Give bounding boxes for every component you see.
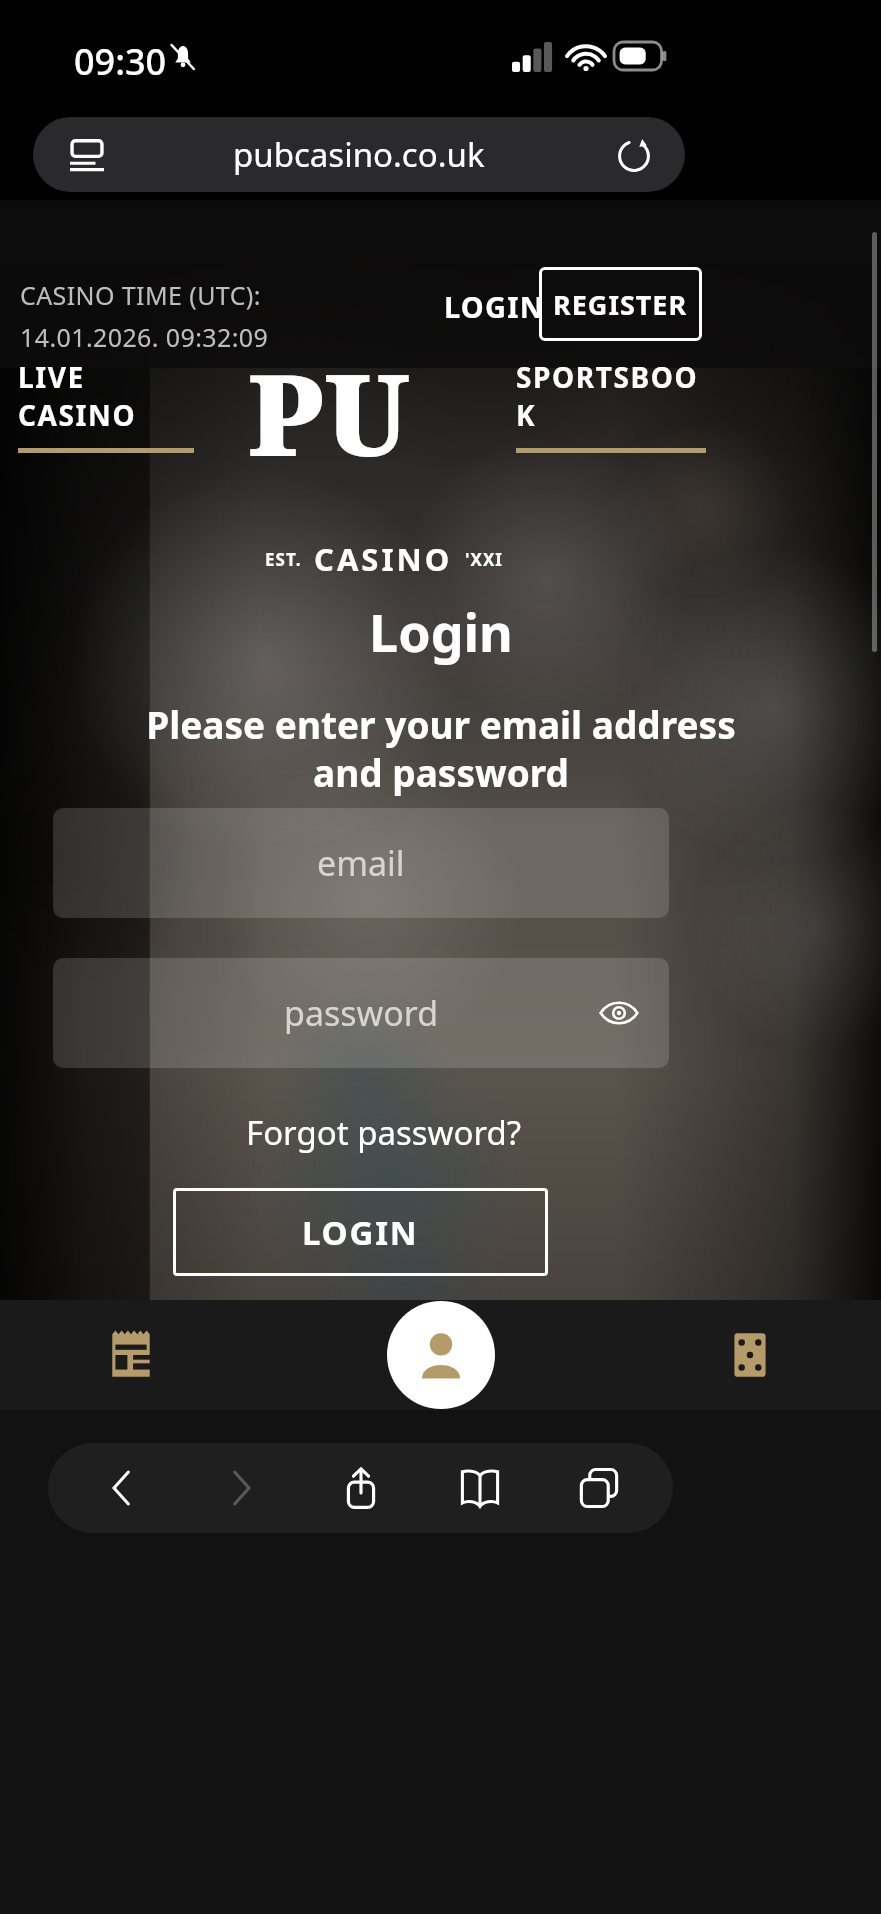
staticText: password: [284, 990, 439, 1036]
staticText: 09:30: [74, 37, 167, 86]
button[interactable]: pubcasino.co.uk: [33, 117, 685, 192]
button[interactable]: LOGIN: [444, 287, 545, 326]
staticText: 'XXI: [465, 548, 503, 571]
button[interactable]: email: [53, 808, 669, 918]
staticText: Please enter your email address and pass…: [131, 699, 751, 798]
staticText: REGISTER: [553, 286, 688, 323]
button[interactable]: Bookmarks: [435, 1443, 525, 1533]
button[interactable]: Show password: [587, 981, 651, 1045]
staticText: Login: [369, 596, 513, 667]
button[interactable]: PUB: [248, 336, 484, 476]
button[interactable]: Forward: [196, 1443, 286, 1533]
staticText: 14.01.2026. 09:32:09: [20, 320, 269, 354]
button[interactable]: Back: [77, 1443, 167, 1533]
button[interactable]: LOGIN: [173, 1188, 548, 1276]
staticText: LOGIN: [302, 1210, 419, 1255]
button[interactable]: Page settings: [59, 127, 115, 183]
staticText: PUB: [248, 336, 484, 476]
staticText: LOGIN: [444, 287, 545, 326]
button[interactable]: password: [53, 958, 669, 1068]
staticText: CASINO: [314, 538, 453, 580]
button[interactable]: Forgot password?: [246, 1110, 522, 1155]
button[interactable]: Share: [316, 1443, 406, 1533]
button[interactable]: Tabs: [554, 1443, 644, 1533]
staticText: email: [317, 840, 405, 886]
button[interactable]: LIVE CASINO: [18, 358, 194, 453]
button[interactable]: Games: [707, 1312, 793, 1398]
staticText: Forgot password?: [246, 1110, 522, 1155]
staticText: EST.: [265, 548, 302, 571]
staticText: SPORTSBOOK: [516, 358, 706, 434]
button[interactable]: Reload: [605, 126, 663, 184]
button[interactable]: Betslip: [88, 1312, 174, 1398]
button[interactable]: SPORTSBOOK: [516, 358, 706, 453]
staticText: CASINO TIME (UTC):: [20, 278, 261, 312]
button[interactable]: REGISTER: [539, 267, 702, 341]
staticText: LIVE CASINO: [18, 358, 194, 434]
staticText: pubcasino.co.uk: [233, 132, 485, 177]
button[interactable]: Account: [387, 1301, 495, 1409]
